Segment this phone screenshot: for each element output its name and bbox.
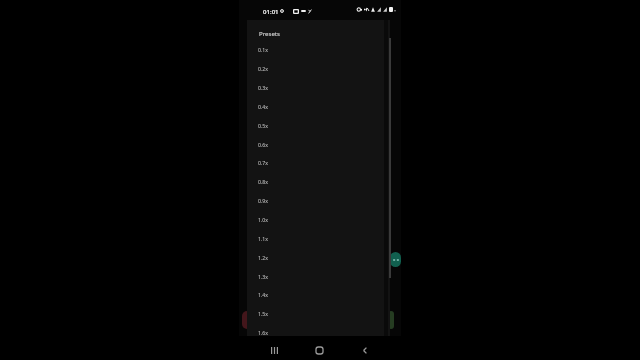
staticText: 0.6x	[258, 141, 269, 148]
button[interactable]: 0.3x	[247, 78, 390, 97]
staticText: 0.4x	[258, 103, 269, 110]
staticText: 0.7x	[258, 159, 269, 166]
button[interactable]: 0.4x	[247, 97, 390, 116]
staticText: 1.5x	[258, 310, 269, 317]
staticText: 1.4x	[258, 291, 269, 298]
staticText: 01:01	[263, 7, 279, 15]
button[interactable]: 1.3x	[247, 267, 390, 286]
staticText: 1.1x	[258, 235, 269, 242]
button[interactable]: 0.6x	[247, 135, 390, 154]
staticText: 1.0x	[258, 216, 269, 223]
staticText: 0.2x	[258, 65, 269, 72]
staticText: 1.3x	[258, 273, 269, 280]
button[interactable]: 0.8x	[247, 172, 390, 191]
button[interactable]: 0.1x	[247, 40, 390, 59]
staticText: 1.6x	[258, 329, 269, 336]
button[interactable]: 1.4x	[247, 285, 390, 304]
staticText: Presets	[259, 29, 280, 37]
button[interactable]: Home	[309, 340, 329, 360]
staticText: 0.9x	[258, 197, 269, 204]
staticText: 0.3x	[258, 84, 269, 91]
button[interactable]: 0.5x	[247, 116, 390, 135]
button[interactable]: 1.6x	[247, 323, 390, 342]
button[interactable]: 0.9x	[247, 191, 390, 210]
button[interactable]: Answer call	[388, 311, 394, 329]
button[interactable]: Back	[355, 340, 375, 360]
button[interactable]: 1.5x	[247, 304, 390, 323]
button[interactable]: End call	[242, 311, 252, 329]
button[interactable]: Switch camera	[390, 252, 401, 267]
staticText: 1.2x	[258, 254, 269, 261]
button[interactable]: Recent apps	[264, 340, 284, 360]
staticText: 0.5x	[258, 122, 269, 129]
button[interactable]: 1.1x	[247, 229, 390, 248]
button[interactable]: 1.2x	[247, 248, 390, 267]
staticText: 0.8x	[258, 178, 269, 185]
button[interactable]: 1.0x	[247, 210, 390, 229]
button[interactable]: 0.7x	[247, 153, 390, 172]
button[interactable]: 0.2x	[247, 59, 390, 78]
staticText: 0.1x	[258, 46, 269, 53]
